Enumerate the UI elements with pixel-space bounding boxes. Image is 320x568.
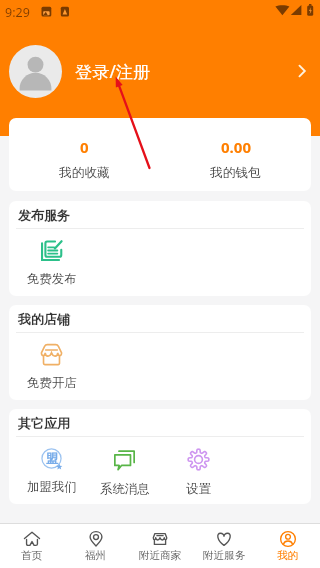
staticText: 其它应用 bbox=[18, 415, 70, 431]
button[interactable]: 0.00 bbox=[160, 118, 311, 191]
other: 我的 bbox=[280, 531, 296, 547]
staticText: 我的店铺 bbox=[18, 311, 70, 327]
other: 附近服务 bbox=[216, 531, 232, 547]
staticText: 系统消息 bbox=[100, 481, 150, 497]
staticText: 加盟我们 bbox=[27, 479, 77, 495]
staticText: 发布服务 bbox=[18, 207, 70, 223]
staticText: 附近商家 bbox=[139, 549, 182, 562]
button[interactable]: 我的 bbox=[256, 524, 320, 568]
staticText: 我的收藏 bbox=[59, 165, 110, 181]
other: 福州 bbox=[88, 531, 104, 547]
staticText: 盟 bbox=[46, 451, 58, 466]
button[interactable]: 系统消息 bbox=[88, 437, 161, 504]
button[interactable]: 0 bbox=[9, 118, 160, 191]
staticText: 9:29 bbox=[5, 4, 30, 21]
staticText: 福州 bbox=[85, 549, 107, 562]
button[interactable]: 附近商家 bbox=[128, 524, 192, 568]
button[interactable]: 设置 bbox=[161, 437, 235, 504]
button[interactable]: 免费发布 bbox=[15, 229, 88, 296]
staticText: 设置 bbox=[186, 481, 211, 497]
staticText: 我的钱包 bbox=[210, 165, 261, 181]
staticText: 首页 bbox=[21, 549, 43, 562]
staticText: 附近服务 bbox=[203, 549, 246, 562]
button[interactable]: 首页 bbox=[0, 524, 64, 568]
staticText: 我的 bbox=[277, 549, 299, 562]
button[interactable]: 福州 bbox=[64, 524, 128, 568]
staticText: 登录/注册 bbox=[75, 60, 151, 83]
staticText: 0.00 bbox=[221, 137, 251, 157]
staticText: 0 bbox=[80, 137, 89, 157]
other: 首页 bbox=[24, 531, 40, 547]
button[interactable]: 盟 bbox=[15, 437, 88, 504]
staticText: 免费开店 bbox=[27, 375, 77, 391]
other: 附近商家 bbox=[152, 531, 168, 547]
button[interactable]: 免费开店 bbox=[15, 333, 88, 400]
button[interactable]: 附近服务 bbox=[192, 524, 256, 568]
staticText: 免费发布 bbox=[27, 271, 77, 287]
button[interactable]: 登录/注册 bbox=[0, 36, 320, 106]
